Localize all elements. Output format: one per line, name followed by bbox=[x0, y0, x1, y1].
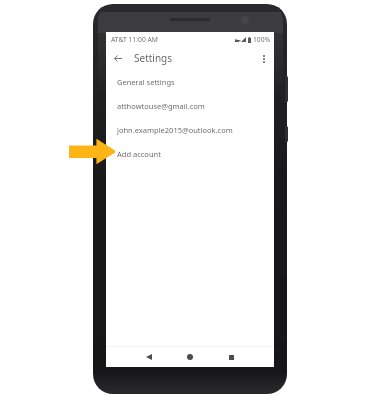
staticText: 100% bbox=[253, 35, 271, 44]
button[interactable]: atthowtouse@gmail.com bbox=[106, 94, 274, 118]
button[interactable]: Back bbox=[109, 50, 126, 67]
button[interactable]: More options bbox=[255, 50, 272, 67]
staticText: atthowtouse@gmail.com bbox=[117, 101, 205, 111]
button[interactable]: Home bbox=[183, 350, 197, 364]
button[interactable]: General settings bbox=[106, 70, 274, 94]
staticText: Settings bbox=[134, 51, 173, 65]
button[interactable]: Add account bbox=[106, 142, 274, 166]
staticText: john.example2015@outlook.com bbox=[117, 125, 233, 135]
button[interactable]: Back bbox=[142, 350, 156, 364]
staticText: Add account bbox=[117, 149, 161, 159]
button[interactable]: Recents bbox=[224, 350, 238, 364]
staticText: AT&T 11:00 AM bbox=[111, 35, 158, 44]
button[interactable]: john.example2015@outlook.com bbox=[106, 118, 274, 142]
staticText: General settings bbox=[117, 77, 175, 87]
